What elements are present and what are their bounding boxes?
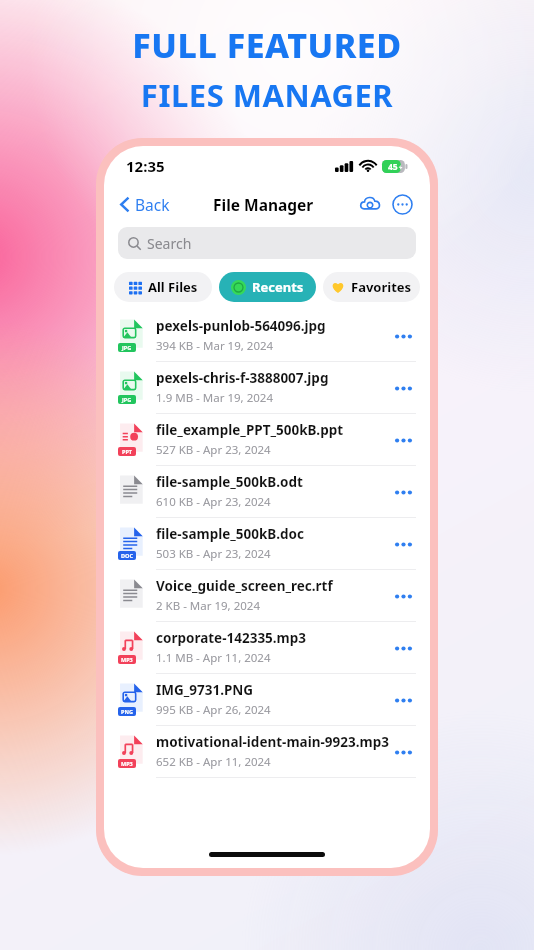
button[interactable]: Search [118,227,416,259]
button[interactable]: More [390,375,416,401]
staticText: file_example_PPT_500kB.ppt [156,421,344,439]
staticText: MP3 [121,656,133,663]
button[interactable]: More [390,323,416,349]
button[interactable]: More [390,531,416,557]
staticText: PNG [121,708,133,715]
staticText: 610 KB - Apr 23, 2024 [156,494,271,510]
staticText: motivational-ident-main-9923.mp3 [156,733,389,751]
button[interactable]: More [390,739,416,765]
staticText: 527 KB - Apr 23, 2024 [156,442,271,458]
button[interactable]: JPG [104,310,430,362]
staticText: PPT [122,448,133,455]
button[interactable]: All Files [114,272,212,302]
button[interactable]: More [390,427,416,453]
staticText: Search [147,234,192,253]
button[interactable]: More [390,479,416,505]
button[interactable]: MP3 [104,726,430,778]
staticText: FULL FEATURED [0,22,534,68]
staticText: FILES MANAGER [0,74,534,116]
button[interactable]: Voice_guide_screen_rec.rtf [104,570,430,622]
staticText: Voice_guide_screen_rec.rtf [156,577,333,595]
button[interactable]: Favorites [323,272,420,302]
staticText: IMG_9731.PNG [156,681,254,699]
staticText: 45 [388,161,398,173]
staticText: All Files [148,278,198,296]
staticText: 652 KB - Apr 11, 2024 [156,754,271,770]
staticText: DOC [121,552,133,559]
button[interactable]: MP3 [104,622,430,674]
staticText: JPG [122,344,132,351]
staticText: File Manager [213,194,314,215]
staticText: Favorites [351,278,412,296]
staticText: 12:35 [126,156,165,176]
button[interactable]: JPG [104,362,430,414]
button[interactable]: DOC [104,518,430,570]
button[interactable]: More [390,687,416,713]
button[interactable]: More [390,583,416,609]
staticText: Recents [252,278,304,296]
staticText: pexels-punlob-564096.jpg [156,317,326,335]
staticText: 2 KB - Mar 19, 2024 [156,598,261,614]
button[interactable]: Recents [219,272,316,302]
staticText: file-sample_500kB.doc [156,525,304,543]
button[interactable]: Cloud [356,190,384,218]
button[interactable]: Back [118,190,172,219]
staticText: 995 KB - Apr 26, 2024 [156,702,271,718]
staticText: 394 KB - Mar 19, 2024 [156,338,274,354]
staticText: 503 KB - Apr 23, 2024 [156,546,271,562]
button[interactable]: More options [388,190,416,218]
button[interactable]: PNG [104,674,430,726]
staticText: 1.1 MB - Apr 11, 2024 [156,650,271,666]
staticText: 1.9 MB - Mar 19, 2024 [156,390,273,406]
staticText: Back [135,194,170,215]
staticText: corporate-142335.mp3 [156,629,307,647]
button[interactable]: file-sample_500kB.odt [104,466,430,518]
staticText: JPG [122,396,132,403]
staticText: pexels-chris-f-3888007.jpg [156,369,329,387]
button[interactable]: PPT [104,414,430,466]
staticText: file-sample_500kB.odt [156,473,303,491]
staticText: MP3 [121,760,133,767]
button[interactable]: More [390,635,416,661]
